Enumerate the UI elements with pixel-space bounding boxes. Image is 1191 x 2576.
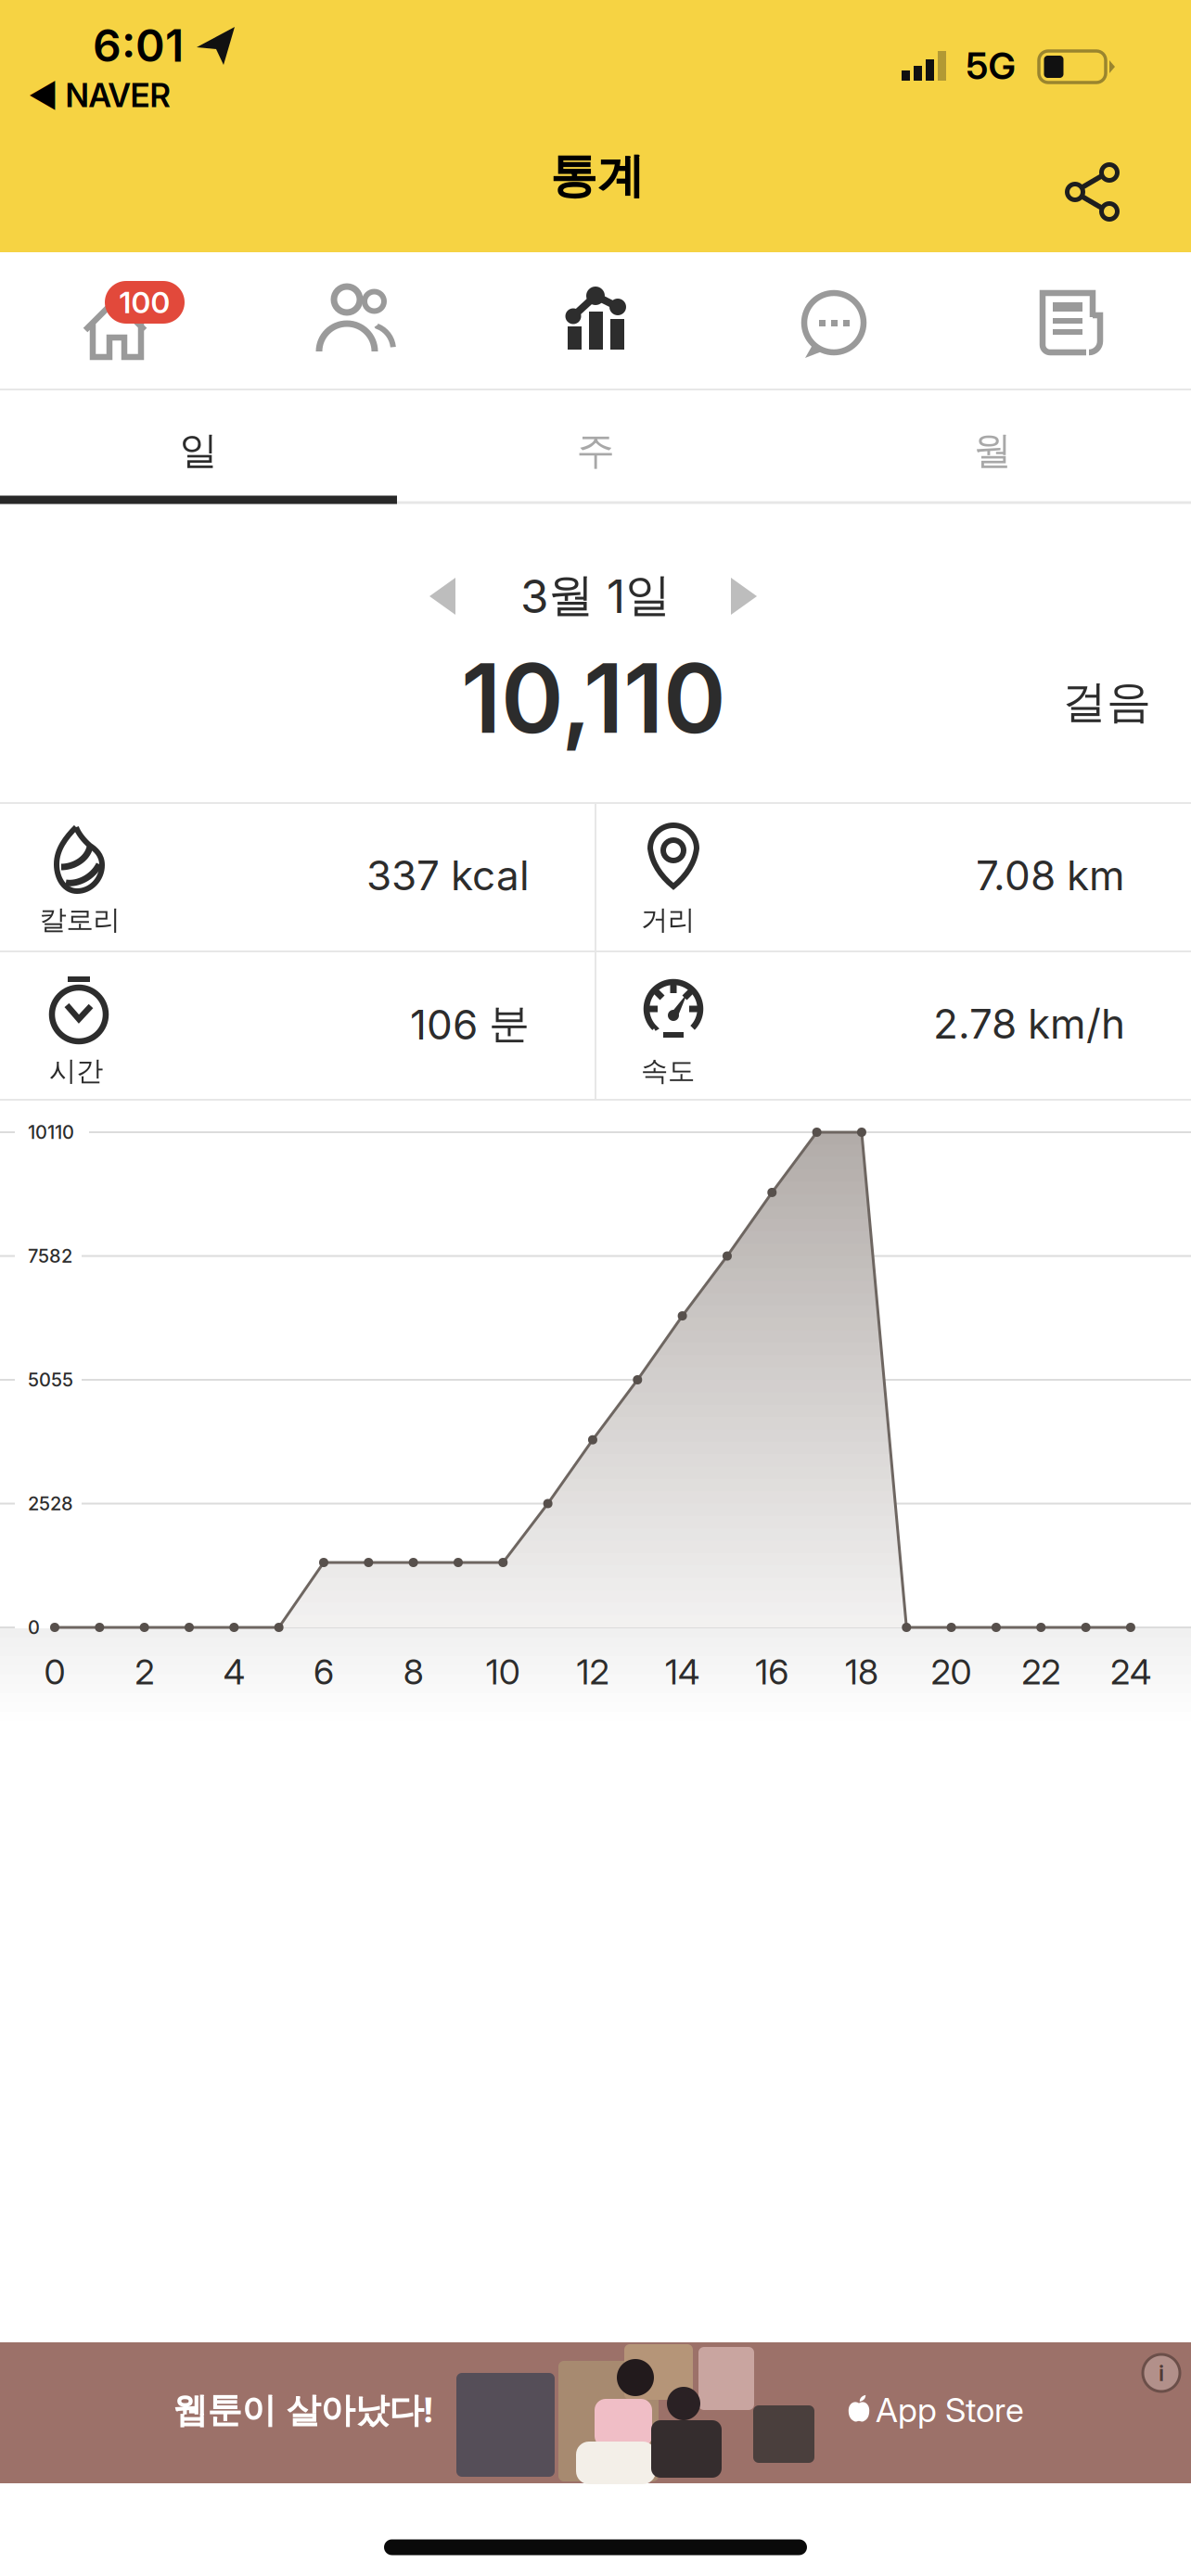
staticText: 0: [28, 1616, 40, 1639]
button[interactable]: 웹툰이 살아났다!: [0, 2342, 1191, 2483]
staticText: 4: [223, 1651, 245, 1693]
staticText: 일: [179, 427, 218, 474]
staticText: i: [1159, 2359, 1164, 2386]
staticText: 24: [1110, 1651, 1151, 1693]
staticText: 칼로리: [39, 903, 120, 937]
staticText: 시간: [49, 1054, 103, 1088]
button[interactable]: Friends: [315, 279, 399, 363]
staticText: 걸음: [1062, 675, 1151, 729]
staticText: 6: [314, 1651, 334, 1693]
button[interactable]: Home: [72, 274, 184, 366]
staticText: 20: [931, 1651, 972, 1693]
button[interactable]: Previous day: [428, 576, 459, 617]
button[interactable]: Ad information: [1143, 2354, 1180, 2391]
button[interactable]: Next day: [727, 576, 759, 617]
staticText: 10110: [28, 1121, 74, 1143]
staticText: 주: [576, 427, 615, 474]
staticText: 100: [119, 284, 170, 320]
button[interactable]: 월: [794, 395, 1191, 506]
staticText: 10: [486, 1651, 520, 1693]
staticText: ◀ NAVER: [28, 76, 170, 115]
staticText: 3월 1일: [520, 566, 671, 624]
button[interactable]: 주: [397, 395, 794, 506]
staticText: 12: [576, 1651, 609, 1693]
button[interactable]: 일: [0, 395, 397, 506]
staticText: 337 kcal: [366, 851, 530, 900]
staticText: App Store: [876, 2390, 1024, 2430]
staticText: 5G: [966, 43, 1015, 88]
staticText: 통계: [550, 147, 645, 205]
button[interactable]: Statistics: [558, 286, 633, 360]
staticText: 8: [403, 1651, 424, 1693]
staticText: 7582: [28, 1245, 72, 1267]
staticText: 22: [1022, 1651, 1060, 1693]
staticText: 7.08 km: [976, 851, 1125, 900]
staticText: 거리: [641, 903, 695, 937]
staticText: 6:01: [93, 19, 184, 72]
button[interactable]: Share: [1059, 159, 1124, 224]
staticText: 웹툰이 살아났다!: [173, 2386, 434, 2432]
staticText: 2: [135, 1651, 154, 1693]
button[interactable]: ◀ NAVER: [28, 76, 170, 115]
staticText: 18: [845, 1651, 878, 1693]
button[interactable]: Chat: [792, 282, 876, 365]
staticText: 10,110: [461, 641, 726, 756]
staticText: 106 분: [410, 998, 530, 1049]
staticText: 0: [44, 1651, 65, 1693]
button[interactable]: News: [1031, 280, 1114, 363]
staticText: 16: [755, 1651, 789, 1693]
staticText: 5055: [28, 1369, 73, 1391]
staticText: 월: [973, 427, 1012, 474]
staticText: 14: [665, 1651, 699, 1693]
staticText: 2.78 km/h: [933, 999, 1125, 1048]
staticText: 속도: [641, 1054, 695, 1088]
staticText: 2528: [28, 1492, 73, 1515]
